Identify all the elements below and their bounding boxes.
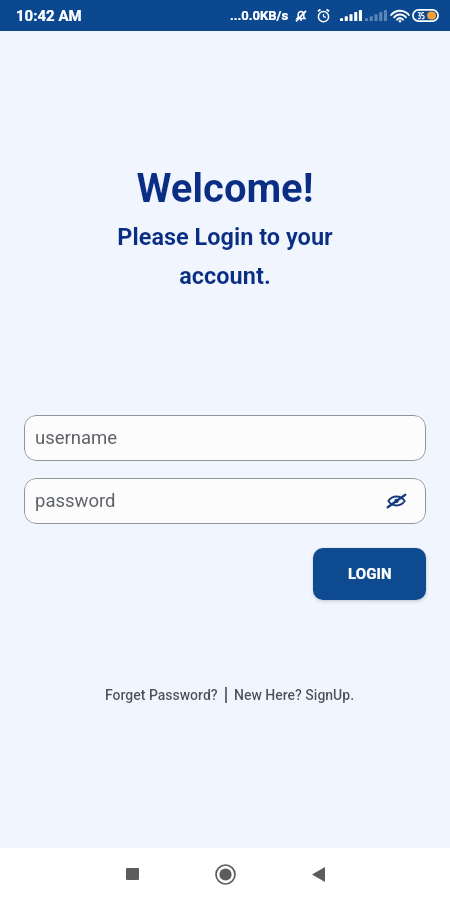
staticText: username (35, 427, 118, 449)
button[interactable]: username (24, 415, 426, 461)
staticText: New Here? SignUp. (234, 687, 355, 703)
staticText: password (35, 490, 116, 512)
button[interactable]: New Here? SignUp. (231, 682, 358, 708)
staticText: LOGIN (348, 565, 392, 583)
staticText: 10:42 AM (16, 7, 82, 25)
button[interactable]: Show password (385, 490, 407, 512)
button[interactable]: Recents (114, 856, 150, 892)
button[interactable]: Forget Password? (102, 682, 221, 708)
button[interactable]: password (24, 478, 426, 524)
button[interactable]: Home (207, 856, 243, 892)
staticText: Forget Password? (105, 687, 218, 703)
staticText: Please Login to your account. (100, 223, 350, 290)
button[interactable]: LOGIN (313, 548, 426, 600)
staticText: Welcome! (0, 165, 450, 212)
staticText: ...0.0KB/s (230, 8, 289, 23)
button[interactable]: Back (300, 856, 336, 892)
